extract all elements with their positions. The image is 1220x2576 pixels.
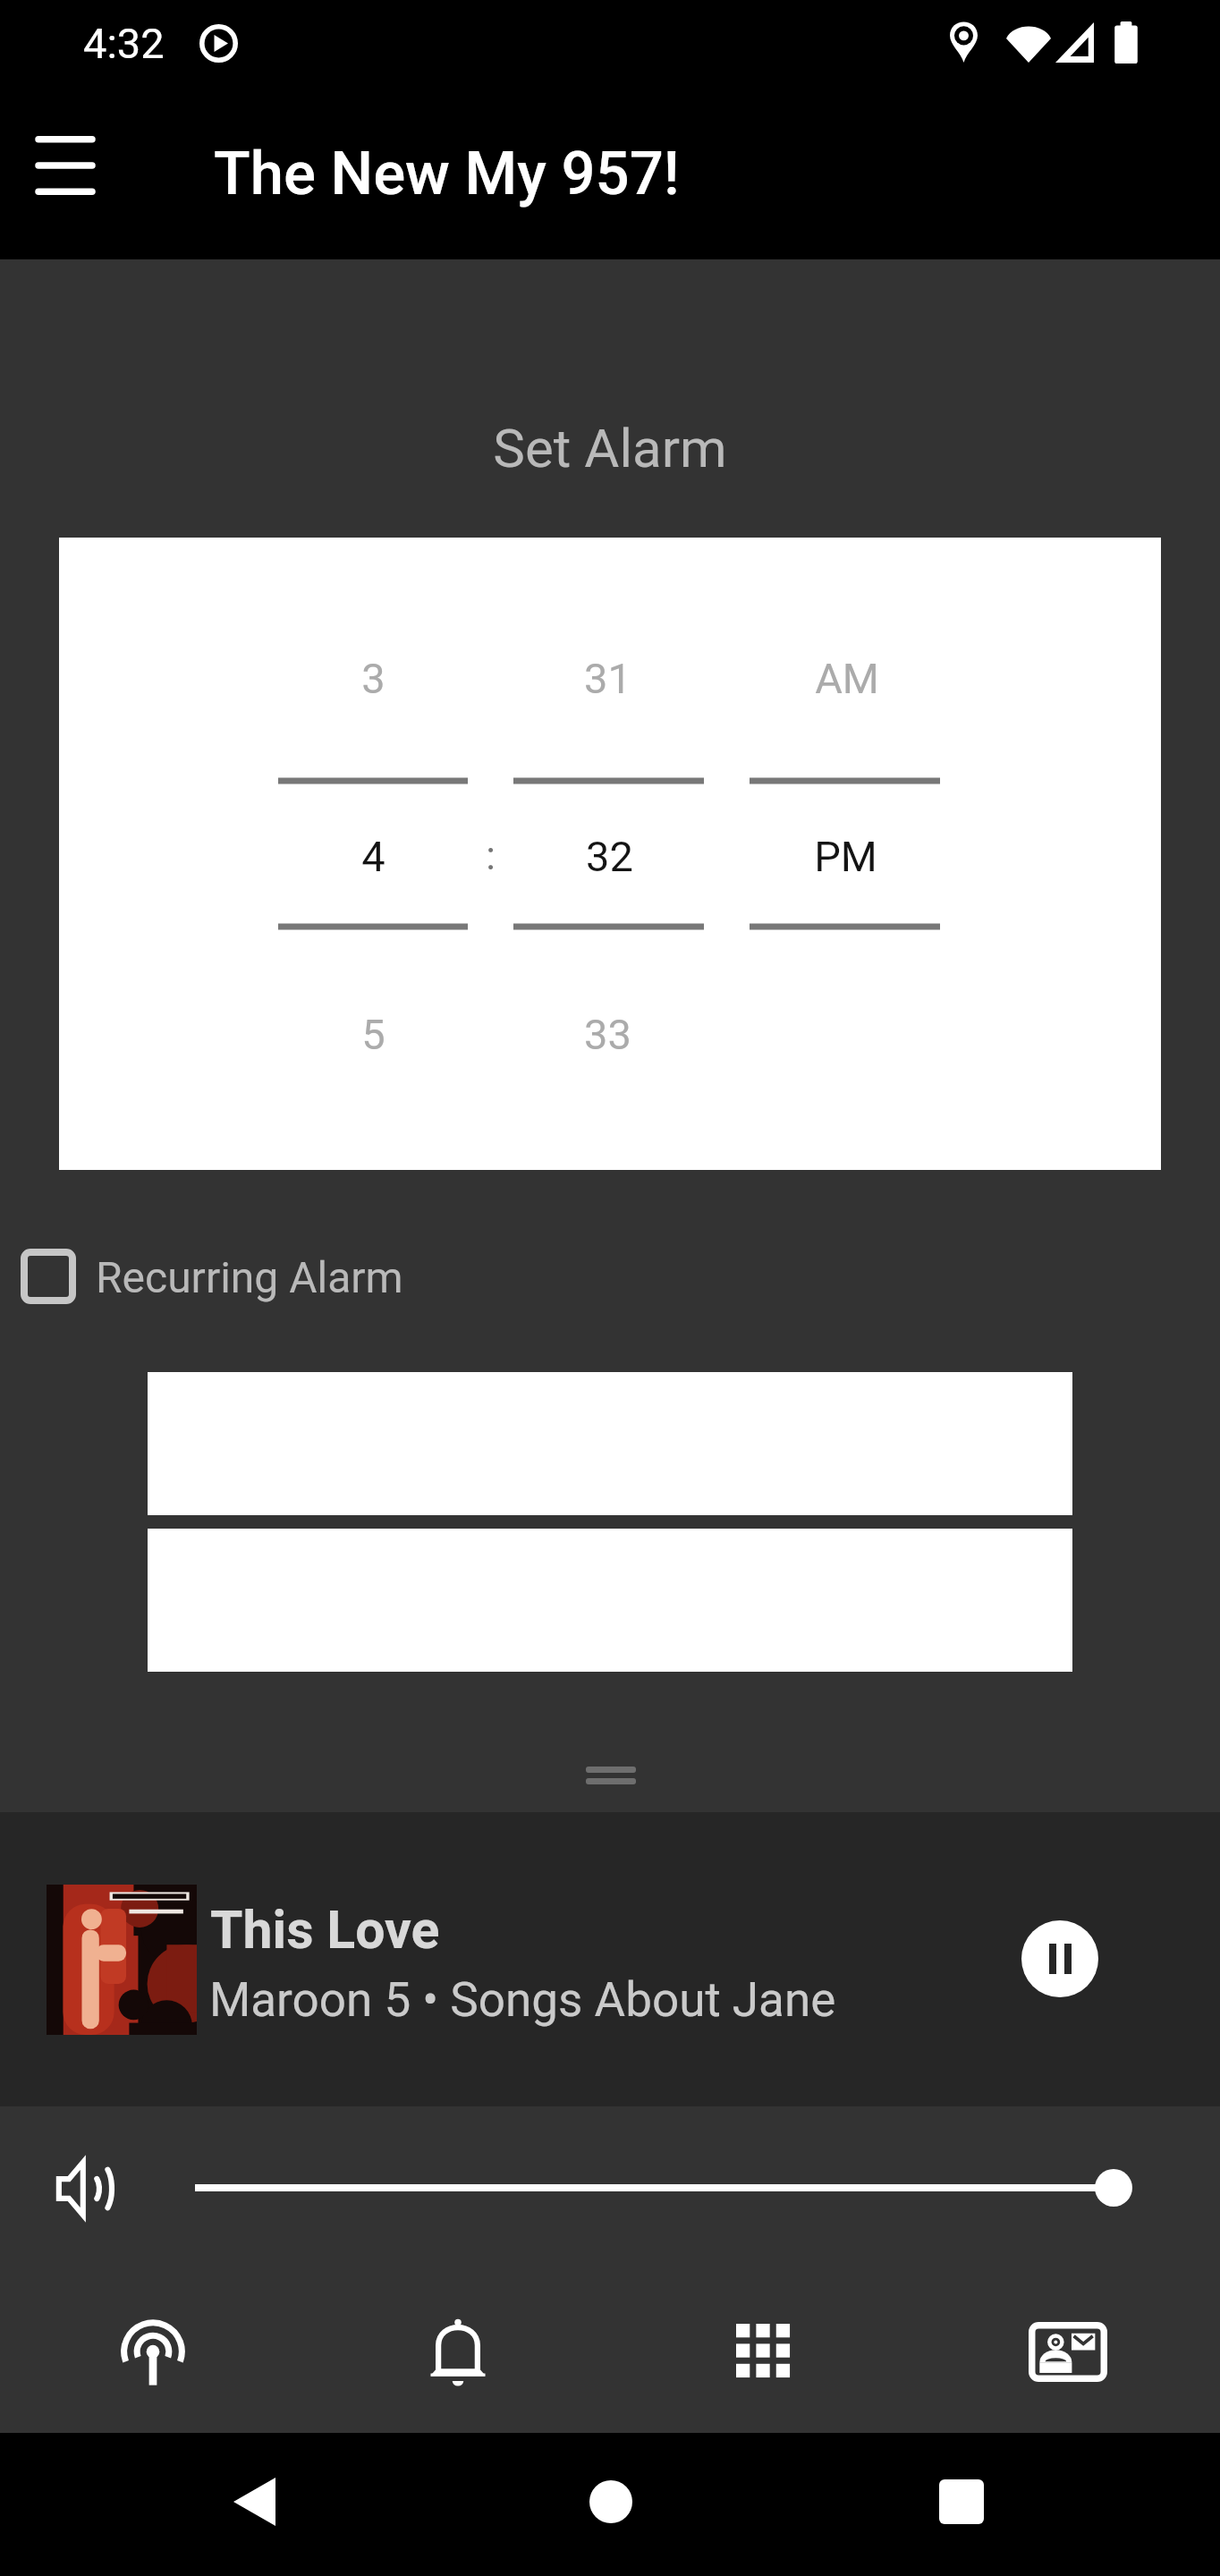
button[interactable]: Contact xyxy=(915,2281,1220,2433)
staticText: 32 xyxy=(586,832,633,881)
button[interactable]: 32 xyxy=(502,816,716,896)
button[interactable]: Recent apps xyxy=(909,2449,1013,2554)
staticText: PM xyxy=(814,832,877,881)
button[interactable]: : xyxy=(383,816,597,896)
button[interactable]: AM xyxy=(740,638,954,718)
staticText: : xyxy=(486,833,496,879)
staticText: Set Alarm xyxy=(0,417,1220,479)
button[interactable]: 33 xyxy=(500,994,715,1074)
staticText: 4 xyxy=(361,832,385,881)
button[interactable]: Recurring Alarm xyxy=(0,1231,465,1311)
button[interactable]: 31 xyxy=(500,638,715,718)
staticText: 5 xyxy=(361,1010,385,1059)
button[interactable]: 4 xyxy=(266,816,480,896)
button[interactable]: Back xyxy=(202,2449,307,2554)
staticText: 31 xyxy=(584,654,631,703)
button[interactable]: Apps xyxy=(610,2281,915,2433)
staticText: The New My 957! xyxy=(214,139,680,209)
button[interactable]: Volume xyxy=(55,2157,118,2220)
button[interactable]: 3 xyxy=(266,638,480,718)
button[interactable]: Broadcast xyxy=(0,2281,305,2433)
staticText: AM xyxy=(815,654,879,703)
button[interactable]: Notifications xyxy=(305,2281,610,2433)
button[interactable]: Alarm ringtone xyxy=(148,1372,1072,1515)
staticText: 4:32 xyxy=(83,19,165,68)
button[interactable]: Open navigation menu xyxy=(4,105,125,225)
staticText: This Love xyxy=(210,1899,440,1961)
staticText: Maroon 5 • Songs About Jane xyxy=(209,1972,836,2028)
button[interactable]: Pause xyxy=(1021,1920,1098,1997)
button[interactable]: This Love xyxy=(0,1812,1220,2106)
button[interactable]: Home xyxy=(558,2449,663,2554)
staticText: 33 xyxy=(584,1010,631,1059)
staticText: 3 xyxy=(361,654,385,703)
button[interactable]: PM xyxy=(738,816,953,896)
button[interactable]: Expand player xyxy=(586,1767,636,1784)
staticText: Recurring Alarm xyxy=(96,1252,403,1302)
button[interactable]: 5 xyxy=(266,994,480,1074)
